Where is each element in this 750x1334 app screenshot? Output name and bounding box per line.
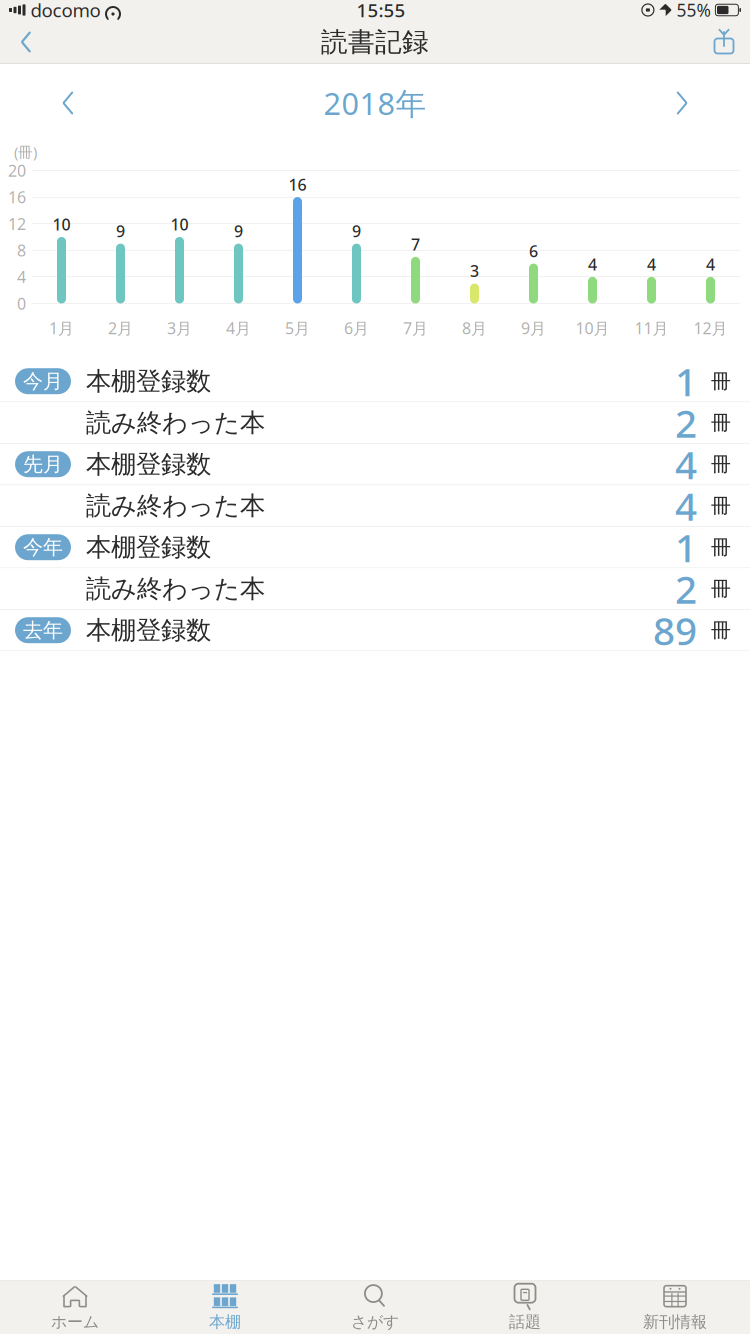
staticText: 6 [529, 240, 538, 261]
staticText: 10 [52, 214, 70, 235]
staticText: 冊 [711, 576, 731, 601]
staticText: 先月 [23, 452, 63, 476]
staticText: 55% [676, 0, 710, 21]
staticText: 1 [675, 522, 697, 573]
staticText: (冊) [14, 142, 37, 161]
staticText: 冊 [711, 369, 731, 393]
button[interactable]: 話題 [450, 1281, 600, 1334]
staticText: 去年 [23, 618, 63, 642]
staticText: 新刊情報 [643, 1312, 707, 1332]
staticText: 8 [17, 240, 26, 261]
staticText: 10月 [575, 317, 609, 339]
staticText: 4月 [226, 317, 251, 339]
button[interactable]: 今月 [0, 361, 750, 402]
staticText: 今年 [23, 535, 63, 559]
button[interactable]: 本棚 [150, 1281, 300, 1334]
staticText: 冊 [711, 535, 731, 559]
staticText: 2月 [108, 317, 133, 339]
staticText: 冊 [711, 410, 731, 435]
button[interactable]: 読み終わった本 [0, 485, 750, 526]
staticText: さがす [351, 1312, 399, 1332]
staticText: 4 [675, 439, 697, 490]
staticText: 10 [170, 214, 188, 235]
staticText: 4 [17, 266, 26, 287]
staticText: 12 [8, 213, 26, 234]
staticText: 20 [8, 160, 26, 181]
staticText: 2018年 [323, 83, 426, 123]
button[interactable]: 去年 [0, 610, 750, 651]
button[interactable]: 読み終わった本 [0, 568, 750, 609]
staticText: 3 [470, 260, 479, 281]
button[interactable]: さがす [300, 1281, 450, 1334]
staticText: ホーム [51, 1312, 99, 1332]
staticText: 5月 [285, 317, 310, 339]
staticText: 本棚登録数 [86, 532, 211, 563]
staticText: 15:55 [356, 0, 405, 22]
staticText: 9 [352, 220, 361, 242]
staticText: 9 [116, 220, 125, 242]
staticText: 冊 [711, 493, 731, 518]
button[interactable]: 共有 [702, 20, 746, 64]
button[interactable]: 前の年 [38, 78, 98, 128]
staticText: 読み終わった本 [86, 490, 265, 521]
staticText: 読書記録 [321, 26, 429, 58]
staticText: 冊 [711, 618, 731, 642]
staticText: docomo [30, 0, 100, 22]
staticText: 本棚 [209, 1312, 241, 1332]
staticText: 今月 [23, 369, 63, 393]
button[interactable]: 次の年 [652, 78, 712, 128]
staticText: 7月 [403, 317, 428, 339]
staticText: 6月 [344, 317, 369, 339]
staticText: 読み終わった本 [86, 407, 265, 438]
staticText: 話題 [509, 1312, 541, 1332]
staticText: 12月 [693, 317, 727, 339]
staticText: 11月 [634, 317, 668, 339]
button[interactable]: 戻る [4, 20, 48, 64]
button[interactable]: 先月 [0, 444, 750, 485]
staticText: 4 [675, 480, 697, 531]
staticText: 0 [17, 293, 26, 314]
staticText: 16 [288, 174, 306, 195]
staticText: 4 [647, 254, 656, 275]
staticText: 1月 [49, 317, 74, 339]
staticText: 4 [706, 254, 715, 275]
staticText: 本棚登録数 [86, 449, 211, 480]
button[interactable]: 今年 [0, 527, 750, 568]
button[interactable]: 新刊情報 [600, 1281, 750, 1334]
staticText: 1 [675, 356, 697, 407]
staticText: 2 [675, 397, 697, 448]
staticText: 2 [675, 563, 697, 614]
staticText: 8月 [462, 317, 487, 339]
staticText: 本棚登録数 [86, 615, 211, 646]
button[interactable]: 読み終わった本 [0, 402, 750, 443]
staticText: 7 [411, 234, 420, 255]
staticText: 16 [8, 186, 26, 208]
button[interactable]: ホーム [0, 1281, 150, 1334]
staticText: 4 [588, 254, 597, 275]
staticText: 89 [653, 605, 697, 656]
staticText: 読み終わった本 [86, 573, 265, 604]
staticText: 本棚登録数 [86, 366, 211, 397]
staticText: 9月 [521, 317, 546, 339]
staticText: 3月 [167, 317, 192, 339]
staticText: 9 [234, 220, 243, 242]
staticText: 冊 [711, 452, 731, 476]
